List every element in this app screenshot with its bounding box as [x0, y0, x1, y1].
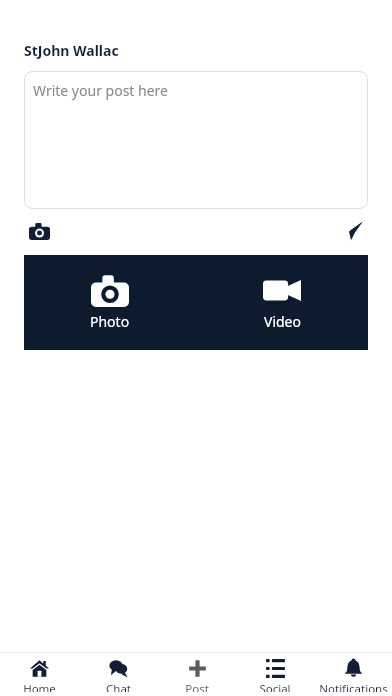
- button[interactable]: Home: [0, 653, 79, 696]
- button[interactable]: Notifications: [314, 653, 392, 696]
- staticText: Write your post here: [33, 81, 168, 100]
- button[interactable]: Add photo: [24, 216, 54, 246]
- staticText: Post: [185, 681, 209, 692]
- button[interactable]: Social: [236, 653, 314, 696]
- staticText: Notifications: [319, 681, 388, 692]
- staticText: Social: [259, 681, 291, 692]
- button[interactable]: Send post: [338, 216, 368, 246]
- staticText: StJohn Wallac: [24, 41, 119, 60]
- button[interactable]: Video: [196, 255, 368, 350]
- button[interactable]: Post: [158, 653, 236, 696]
- button[interactable]: Photo: [24, 255, 196, 350]
- staticText: Home: [23, 681, 56, 692]
- staticText: Video: [264, 312, 301, 331]
- button[interactable]: Chat: [79, 653, 158, 696]
- staticText: Photo: [90, 312, 130, 331]
- staticText: Chat: [106, 681, 131, 692]
- button[interactable]: Write your post here: [24, 71, 368, 209]
